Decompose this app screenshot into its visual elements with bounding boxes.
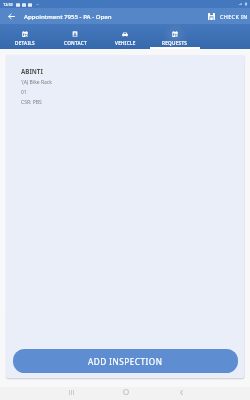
button[interactable]: Back [0, 8, 22, 24]
button[interactable]: REQUESTS [150, 24, 200, 49]
button[interactable]: VEHICLE [100, 24, 150, 49]
button[interactable]: Home [118, 387, 134, 397]
staticText: VEHICLE [115, 40, 136, 46]
staticText: 01 [21, 89, 27, 96]
button[interactable]: CONTACT [50, 24, 100, 49]
staticText: '(A) Bike Rack [21, 79, 52, 86]
staticText: CHECK IN [220, 13, 248, 20]
button[interactable]: Back [173, 387, 189, 397]
button[interactable]: DETAILS [0, 24, 50, 49]
staticText: ABINTI [21, 67, 43, 75]
staticText: 12:53 [3, 2, 13, 7]
staticText: CSR: PBS [21, 99, 42, 106]
staticText: Appointment 7955 - PA - Open [24, 12, 112, 20]
staticText: REQUESTS [162, 40, 188, 46]
button[interactable]: ADD INSPECTION [13, 349, 238, 373]
staticText: ADD INSPECTION [88, 356, 163, 367]
staticText: DETAILS [15, 40, 35, 46]
staticText: CONTACT [64, 40, 87, 46]
button[interactable]: Recent apps [63, 387, 79, 397]
button[interactable]: CHECK IN [204, 8, 250, 24]
